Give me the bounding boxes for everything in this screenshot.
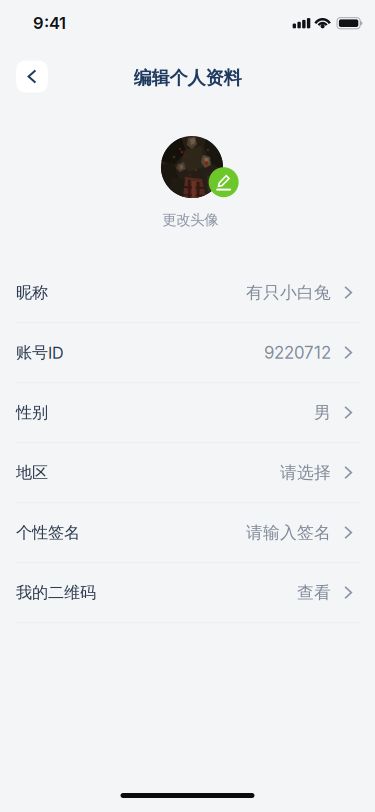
staticText: 9220712 [264, 342, 331, 363]
staticText: 昵称 [16, 282, 48, 303]
button[interactable]: 更改头像 [162, 198, 218, 229]
staticText: 请选择 [280, 462, 331, 483]
staticText: 查看 [297, 582, 331, 603]
staticText: 我的二维码 [16, 582, 96, 603]
staticText: 有只小白兔 [246, 282, 331, 303]
button[interactable]: 个性签名 [0, 503, 375, 563]
staticText: 账号ID [16, 342, 64, 363]
button[interactable]: 地区 [0, 443, 375, 503]
staticText: 更改头像 [162, 211, 218, 229]
button[interactable]: 账号ID [0, 323, 375, 383]
staticText: 9:41 [33, 13, 66, 33]
button[interactable]: Back [16, 60, 48, 92]
staticText: 请输入签名 [246, 522, 331, 543]
button[interactable]: 性别 [0, 383, 375, 443]
button[interactable]: 我的二维码 [0, 563, 375, 623]
staticText: 个性签名 [16, 522, 80, 543]
button[interactable]: Change avatar [161, 136, 239, 198]
staticText: 性别 [16, 402, 48, 423]
staticText: 男 [314, 402, 331, 423]
staticText: 编辑个人资料 [133, 67, 241, 89]
button[interactable]: 昵称 [0, 263, 375, 323]
staticText: 地区 [16, 462, 48, 483]
